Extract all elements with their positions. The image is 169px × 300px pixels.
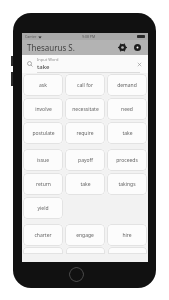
button[interactable]: take	[107, 122, 147, 144]
staticText: issue	[37, 157, 49, 164]
staticText: Thesaurus S.	[27, 42, 75, 53]
staticText: take	[37, 63, 50, 71]
staticText: require	[76, 130, 94, 137]
staticText: engage	[76, 232, 94, 239]
staticText: call for	[77, 82, 93, 89]
button[interactable]: engage	[65, 224, 105, 246]
button[interactable]: involve	[23, 98, 63, 120]
button[interactable]: Clear	[135, 60, 144, 69]
staticText: ask	[39, 82, 47, 89]
button[interactable]: take	[65, 173, 105, 195]
button[interactable]: demand	[107, 74, 147, 96]
button[interactable]: Input Word	[22, 55, 148, 73]
button[interactable]: issue	[23, 149, 63, 171]
staticText: hire	[122, 232, 132, 239]
button[interactable]: postulate	[23, 122, 63, 144]
button[interactable]: takings	[107, 173, 147, 195]
button[interactable]	[108, 247, 147, 254]
button[interactable]: Settings	[117, 42, 128, 53]
button[interactable]: call for	[65, 74, 105, 96]
button[interactable]: Info	[132, 42, 143, 53]
button[interactable]: need	[107, 98, 147, 120]
staticText: need	[121, 106, 133, 113]
button[interactable]: return	[23, 173, 63, 195]
button[interactable]: ask	[23, 74, 63, 96]
staticText: take	[80, 181, 91, 188]
staticText: proceeds	[116, 157, 138, 164]
staticText: return	[36, 181, 51, 188]
button[interactable]: require	[65, 122, 105, 144]
button[interactable]	[23, 247, 63, 254]
staticText: Input Word	[37, 57, 59, 62]
staticText: involve	[35, 106, 52, 113]
staticText: Carrier	[25, 34, 37, 39]
button[interactable]: proceeds	[107, 149, 147, 171]
button[interactable]: yield	[23, 197, 63, 219]
button[interactable]: charter	[23, 224, 63, 246]
staticText: postulate	[32, 130, 55, 137]
staticText: take	[122, 130, 133, 137]
staticText: yield	[37, 205, 49, 212]
staticText: 9:08 PM	[82, 34, 96, 39]
button[interactable]: necessitate	[65, 98, 105, 120]
staticText: charter	[34, 232, 52, 239]
button[interactable]: payoff	[65, 149, 105, 171]
staticText: payoff	[78, 157, 93, 164]
staticText: necessitate	[72, 106, 99, 113]
button[interactable]	[66, 247, 105, 254]
staticText: takings	[118, 181, 136, 188]
button[interactable]: hire	[107, 224, 147, 246]
staticText: demand	[117, 82, 137, 89]
